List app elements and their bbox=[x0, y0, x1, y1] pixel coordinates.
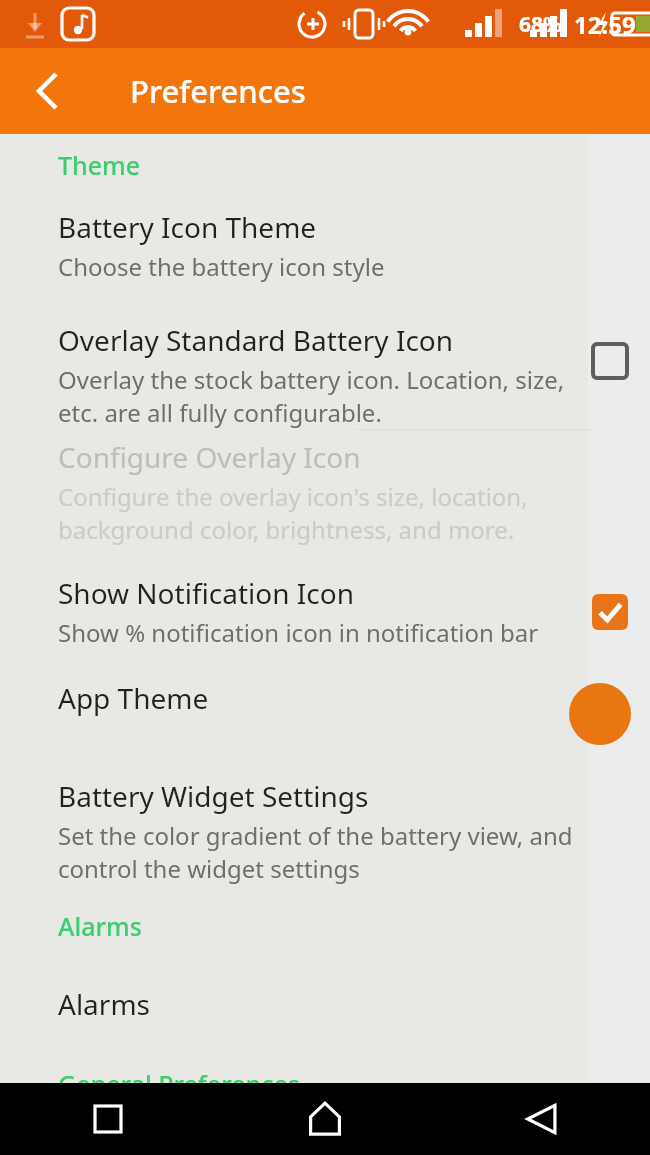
staticText: Overlay Standard Battery Icon bbox=[58, 321, 454, 359]
button[interactable]: Battery Icon Theme bbox=[0, 208, 650, 283]
staticText: App Theme bbox=[58, 679, 209, 717]
button[interactable]: Show Notification Icon bbox=[582, 584, 638, 640]
button[interactable]: Configure Overlay Icon bbox=[0, 438, 650, 546]
button[interactable]: Show Notification Icon bbox=[0, 574, 650, 649]
button[interactable]: Battery Widget Settings bbox=[0, 777, 650, 885]
staticText: Choose the battery icon style bbox=[58, 250, 385, 283]
button[interactable]: App theme color bbox=[565, 679, 635, 749]
button[interactable]: Overlay Standard Battery Icon bbox=[582, 333, 638, 389]
button[interactable]: Back bbox=[433, 1083, 650, 1155]
staticText: Alarms bbox=[58, 909, 142, 943]
staticText: Configure Overlay Icon bbox=[58, 438, 361, 476]
staticText: Configure the overlay icon's size, locat… bbox=[58, 480, 640, 546]
staticText: 12:59 bbox=[574, 8, 636, 41]
staticText: General Preferences bbox=[58, 1067, 301, 1083]
button[interactable]: Overlay Standard Battery Icon bbox=[0, 321, 650, 429]
staticText: 68% bbox=[519, 10, 562, 39]
staticText: Battery Widget Settings bbox=[58, 777, 369, 815]
staticText: Set the color gradient of the battery vi… bbox=[58, 819, 640, 885]
button[interactable]: App Theme bbox=[0, 679, 650, 749]
staticText: Battery Icon Theme bbox=[58, 208, 317, 246]
button[interactable]: Back bbox=[8, 55, 80, 127]
staticText: Show % notification icon in notification… bbox=[58, 616, 539, 649]
staticText: Theme bbox=[58, 148, 141, 182]
button[interactable]: Alarms bbox=[0, 985, 650, 1023]
button[interactable]: Recents bbox=[0, 1083, 216, 1155]
staticText: Show Notification Icon bbox=[58, 574, 354, 612]
button[interactable]: Home bbox=[216, 1083, 433, 1155]
staticText: Alarms bbox=[58, 985, 150, 1023]
staticText: Overlay the stock battery icon. Location… bbox=[58, 363, 572, 429]
staticText: Preferences bbox=[130, 70, 306, 112]
